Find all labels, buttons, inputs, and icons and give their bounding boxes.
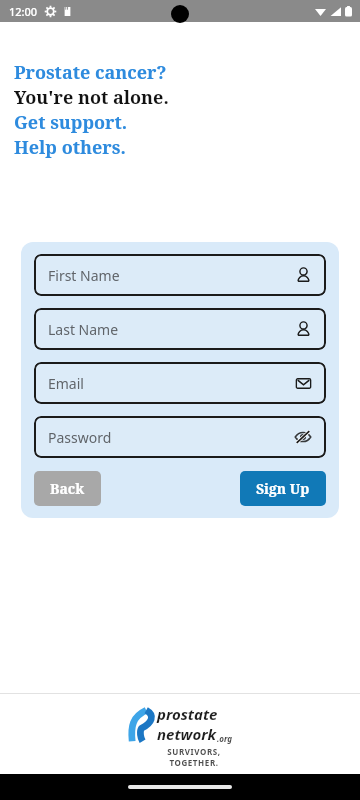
other: Person [295, 321, 312, 338]
staticText: Last Name [48, 320, 119, 339]
staticText: You're not alone. [14, 85, 169, 110]
button[interactable]: Back [34, 471, 101, 506]
staticText: Sign Up [256, 479, 310, 498]
staticText: TOGETHER. [169, 757, 219, 768]
button[interactable]: Sign Up [240, 471, 326, 506]
button[interactable]: Email [34, 362, 326, 404]
button[interactable]: Last Name [34, 308, 326, 350]
staticText: Prostate cancer? [14, 60, 167, 85]
other: Email [295, 375, 312, 392]
button[interactable]: Password [34, 416, 326, 458]
staticText: First Name [48, 266, 120, 285]
staticText: SURVIVORS, [167, 746, 221, 757]
staticText: Back [50, 479, 85, 498]
button[interactable]: First Name [34, 254, 326, 296]
staticText: 12:00 [9, 4, 38, 19]
staticText: prostate [157, 704, 218, 724]
staticText: Help others. [14, 135, 126, 160]
staticText: network [157, 724, 217, 744]
staticText: Email [48, 374, 84, 393]
staticText: Password [48, 428, 112, 447]
staticText: .org [217, 733, 233, 744]
staticText: Get support. [14, 110, 128, 135]
other: Person [295, 267, 312, 284]
other: Show password [294, 428, 312, 446]
